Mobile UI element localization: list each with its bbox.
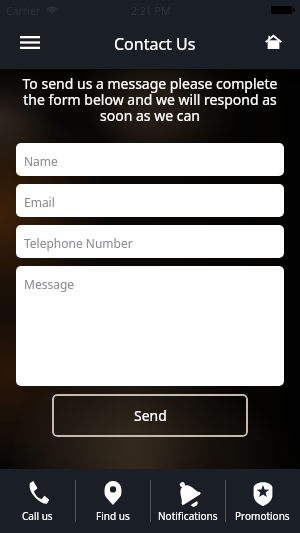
staticText: To send us a message please complete the… — [16, 74, 284, 125]
button[interactable]: Menu — [10, 22, 50, 62]
staticText: Contact Us — [114, 33, 196, 55]
staticText: Message — [24, 276, 75, 292]
button[interactable]: Home — [253, 21, 293, 61]
button[interactable]: Email — [16, 184, 284, 217]
staticText: Promotions — [235, 509, 290, 523]
button[interactable]: Notifications — [150, 469, 225, 533]
staticText: 2:21 PM — [131, 4, 171, 18]
button[interactable]: Telephone Number — [16, 225, 284, 258]
staticText: Carrier — [6, 4, 41, 18]
staticText: Send — [134, 406, 167, 425]
button[interactable]: Find us — [75, 469, 150, 533]
staticText: Name — [24, 153, 58, 169]
staticText: Notifications — [158, 509, 218, 523]
button[interactable]: Call us — [0, 469, 75, 533]
button[interactable]: Send — [52, 394, 248, 437]
staticText: Find us — [96, 509, 130, 523]
staticText: Telephone Number — [24, 235, 133, 251]
button[interactable]: Message — [16, 266, 284, 386]
button[interactable]: Name — [16, 143, 284, 176]
staticText: Email — [24, 194, 55, 210]
staticText: Call us — [22, 509, 53, 523]
button[interactable]: Promotions — [225, 469, 300, 533]
